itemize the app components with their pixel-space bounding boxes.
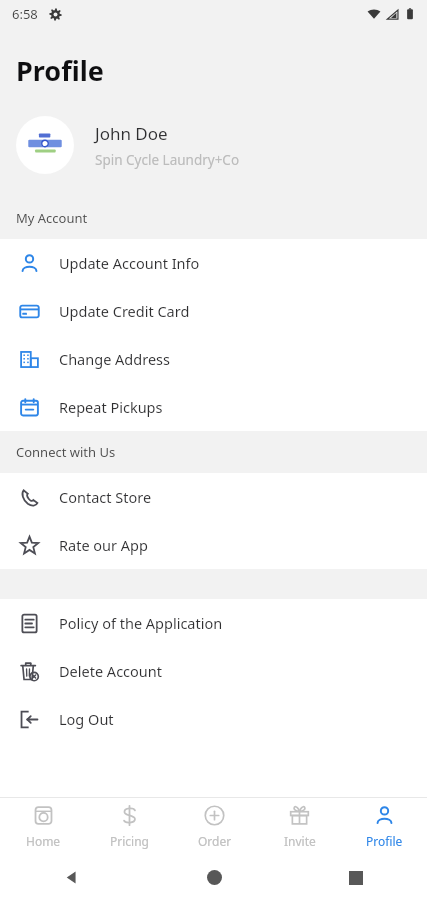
button[interactable]: Update Account Info [0, 239, 427, 287]
staticText: Profile [16, 52, 104, 89]
staticText: Update Account Info [59, 253, 200, 273]
button[interactable]: Pricing [86, 798, 172, 855]
staticText: Change Address [59, 349, 170, 369]
staticText: Order [198, 833, 232, 849]
button[interactable]: Update Credit Card [0, 287, 427, 335]
button[interactable]: Order [172, 798, 257, 855]
button[interactable]: Invite [257, 798, 342, 855]
staticText: Log Out [59, 709, 114, 729]
staticText: Delete Account [59, 661, 162, 681]
staticText: Home [26, 833, 61, 849]
staticText: Policy of the Application [59, 613, 223, 633]
button[interactable]: Profile [342, 798, 427, 855]
button[interactable]: Repeat Pickups [0, 383, 427, 431]
button[interactable]: Rate our App [0, 521, 427, 569]
button[interactable]: John Doe [0, 113, 427, 177]
staticText: John Doe [95, 122, 168, 145]
button[interactable]: Change Address [0, 335, 427, 383]
staticText: Pricing [110, 833, 149, 849]
staticText: Rate our App [59, 535, 148, 555]
button[interactable]: Home [0, 798, 86, 855]
staticText: Invite [284, 833, 316, 849]
button[interactable]: Policy of the Application [0, 599, 427, 647]
other: Home [207, 870, 222, 885]
staticText: My Account [16, 209, 88, 227]
staticText: Profile [366, 833, 403, 849]
button[interactable]: Log Out [0, 695, 427, 743]
button[interactable]: Contact Store [0, 473, 427, 521]
staticText: Spin Cycle Laundry+Co [95, 151, 240, 169]
button[interactable]: Delete Account [0, 647, 427, 695]
staticText: Contact Store [59, 487, 152, 507]
staticText: Connect with Us [16, 443, 116, 461]
other: Back [63, 869, 80, 886]
staticText: 6:58 [12, 5, 38, 23]
staticText: Update Credit Card [59, 301, 190, 321]
staticText: Repeat Pickups [59, 397, 163, 417]
